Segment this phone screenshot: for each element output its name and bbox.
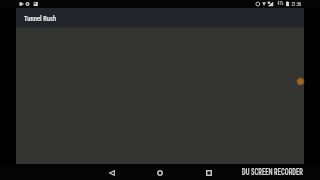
button[interactable]: Floating action <box>296 77 305 86</box>
button[interactable]: Recents <box>193 165 225 180</box>
button[interactable]: Tunnel Rush <box>22 12 59 23</box>
button[interactable]: Home <box>144 165 176 180</box>
button[interactable]: Back <box>96 165 128 180</box>
